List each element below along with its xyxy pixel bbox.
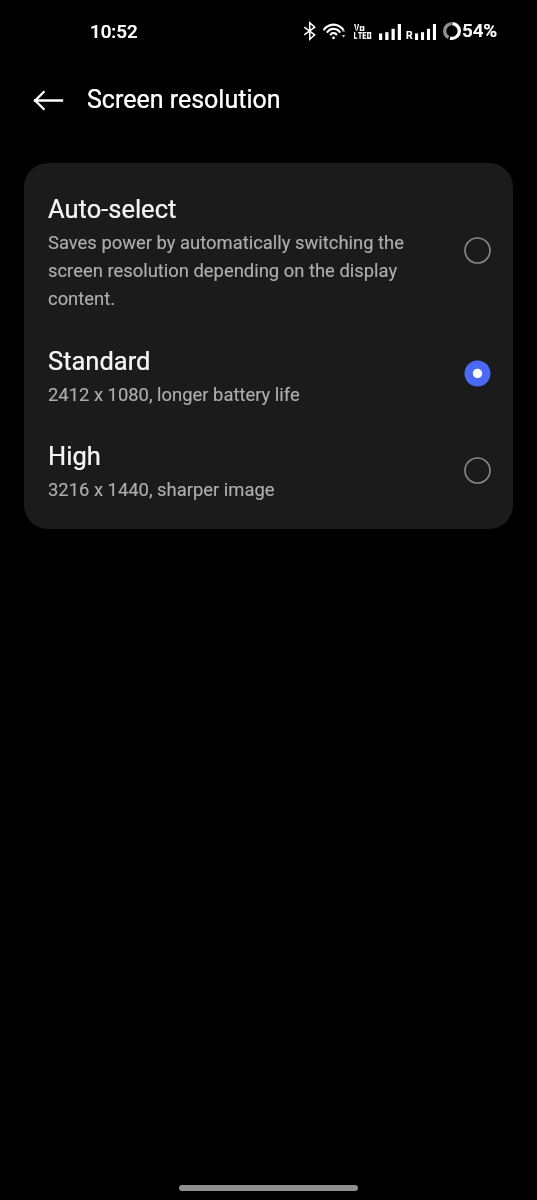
staticText: High — [48, 441, 418, 471]
staticText: R — [406, 29, 413, 41]
staticText: 54% — [462, 20, 498, 42]
staticText: 2412 x 1080, longer battery life — [48, 379, 406, 407]
staticText: Saves power by automatically switching t… — [48, 227, 406, 311]
staticText: Auto-select — [48, 194, 418, 224]
staticText: 3216 x 1440, sharper image — [48, 474, 406, 502]
staticText: Screen resolution — [87, 85, 281, 114]
button[interactable]: Auto-select — [24, 163, 513, 319]
staticText: 10:52 — [90, 21, 138, 43]
button[interactable]: Select Auto-select — [464, 237, 491, 264]
staticText: Standard — [48, 346, 418, 376]
button[interactable]: Select Standard — [464, 360, 491, 387]
button[interactable]: High — [24, 414, 513, 529]
button[interactable]: Navigate up — [24, 76, 72, 124]
button[interactable]: Standard — [24, 319, 513, 414]
button[interactable]: Select High — [464, 457, 491, 484]
